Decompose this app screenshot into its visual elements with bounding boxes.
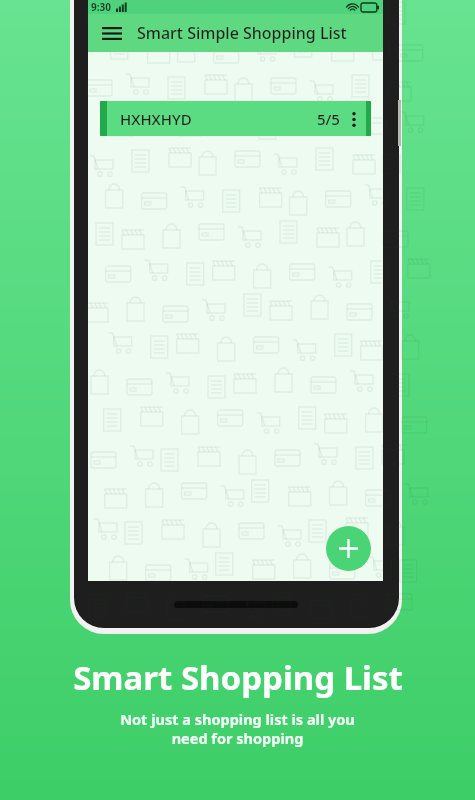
button[interactable]: HXHXHYD [100,101,371,136]
staticText: Not just a shopping list is all you need… [120,709,355,748]
button[interactable]: More options [346,104,362,134]
staticText: 9:30 [91,0,111,14]
staticText: Smart Shopping List [73,655,403,700]
staticText: 5/5 [317,109,340,129]
button[interactable]: Open navigation menu [97,18,127,48]
button[interactable]: Add list [326,526,371,571]
staticText: HXHXHYD [120,109,192,129]
staticText: Smart Simple Shopping List [137,22,347,44]
